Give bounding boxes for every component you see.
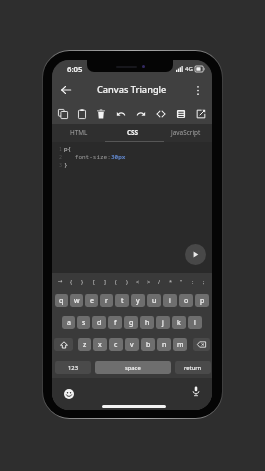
button[interactable]: i [163,294,177,307]
button[interactable]: CSS [106,124,159,142]
button[interactable]: m [173,338,187,351]
button[interactable]: ] [99,273,110,289]
staticText: } [64,161,68,169]
button[interactable]: ; [198,273,209,289]
button[interactable]: Copy [53,103,72,124]
button[interactable]: x [93,338,107,351]
button[interactable]: Voice input [191,386,201,396]
button[interactable]: 123 [55,361,91,374]
button[interactable]: q [55,294,68,307]
staticText: { [70,278,73,285]
staticText: s [82,318,86,328]
staticText: 6:05 [67,64,83,75]
staticText: [ [93,278,95,285]
button[interactable]: l [188,316,202,329]
staticText: j [162,318,164,328]
staticText: < [136,278,140,285]
button[interactable]: HTML [52,124,106,142]
button[interactable]: return [175,361,211,374]
button[interactable]: g [124,316,138,329]
staticText: CSS [127,128,139,137]
button[interactable]: Backspace [193,338,210,351]
button[interactable]: a [62,316,75,329]
button[interactable]: { [66,273,77,289]
button[interactable]: b [141,338,155,351]
staticText: return [184,364,202,372]
button[interactable]: t [115,294,129,307]
staticText: " [180,278,183,285]
button[interactable]: Open preview [191,103,211,124]
button[interactable]: ) [121,273,132,289]
staticText: / [158,278,161,285]
button[interactable]: f [108,316,122,329]
staticText: Canvas Triangle [97,83,167,96]
button[interactable]: h [140,316,154,329]
staticText: : [192,278,194,285]
button[interactable]: o [179,294,193,307]
staticText: a [67,318,71,328]
button[interactable]: JavaScript [159,124,212,142]
staticText: m [177,340,184,350]
staticText: } [81,278,84,285]
button[interactable]: } [77,273,88,289]
button[interactable]: Back [58,82,74,98]
staticText: p{ [64,145,72,153]
button[interactable]: u [147,294,161,307]
button[interactable]: " [176,273,187,289]
staticText: u [152,296,157,306]
button[interactable]: p [195,294,209,307]
button[interactable]: d [92,316,106,329]
button[interactable]: c [109,338,123,351]
staticText: → [58,278,63,284]
button[interactable]: : [187,273,198,289]
button[interactable]: More options [191,83,205,97]
button[interactable]: r [100,294,113,307]
staticText: n [162,340,167,350]
staticText: JavaScript [171,128,201,137]
button[interactable]: Delete [91,103,111,124]
button[interactable]: * [165,273,176,289]
button[interactable]: Emoji [64,389,74,399]
button[interactable]: [ [88,273,99,289]
button[interactable]: Code view [151,103,171,124]
staticText: HTML [70,128,88,137]
staticText: l [194,318,196,328]
button[interactable]: → [55,273,66,289]
staticText: x [98,340,102,350]
button[interactable]: / [154,273,165,289]
staticText: f [114,318,117,328]
button[interactable]: s [77,316,90,329]
button[interactable]: y [131,294,145,307]
button[interactable]: < [132,273,143,289]
staticText: 2 [52,154,62,161]
button[interactable]: e [85,294,98,307]
button[interactable]: Format [171,103,191,124]
staticText: k [177,318,181,328]
button[interactable]: w [70,294,83,307]
staticText: b [146,340,151,350]
staticText: font-size: [64,153,111,161]
button[interactable]: z [78,338,91,351]
staticText: o [184,296,189,306]
staticText: 4G [185,65,193,73]
staticText: 3 [52,162,62,169]
staticText: ) [126,278,128,285]
button[interactable]: Run [185,244,206,265]
button[interactable]: n [157,338,171,351]
button[interactable]: v [125,338,139,351]
button[interactable]: k [172,316,186,329]
staticText: ; [203,278,205,285]
staticText: p [200,296,205,306]
staticText: h [145,318,150,328]
staticText: g [129,318,134,328]
button[interactable]: j [156,316,170,329]
staticText: * [169,278,173,285]
button[interactable]: Redo [131,103,151,124]
button[interactable]: Paste [72,103,91,124]
button[interactable]: > [143,273,154,289]
button[interactable]: ( [110,273,121,289]
button[interactable]: Shift [54,338,73,351]
button[interactable]: space [95,361,171,374]
button[interactable]: Undo [111,103,131,124]
staticText: ] [104,278,106,285]
